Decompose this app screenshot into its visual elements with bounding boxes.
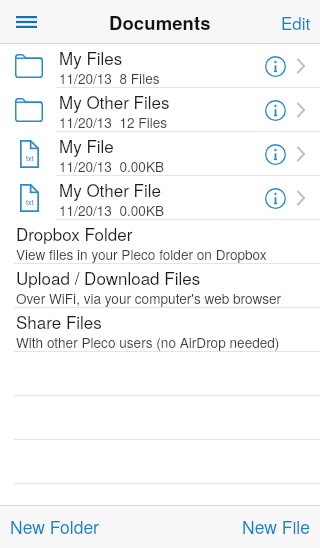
button[interactable]: Info: [261, 88, 295, 132]
button[interactable]: Edit: [272, 0, 320, 44]
button[interactable]: My Files: [0, 44, 320, 88]
staticText: Share Files: [16, 309, 102, 333]
staticText: New Folder: [10, 514, 99, 539]
staticText: Over WiFi, via your computer's web brows…: [16, 288, 282, 307]
staticText: 11/20/13 0.00KB: [59, 156, 165, 175]
button[interactable]: txt: [0, 176, 320, 220]
button[interactable]: New Folder: [0, 505, 109, 548]
button[interactable]: My Other Files: [0, 88, 320, 132]
button[interactable]: txt: [0, 132, 320, 176]
button[interactable]: Info: [261, 44, 295, 88]
button[interactable]: Info: [261, 132, 295, 176]
staticText: With other Pleco users (no AirDrop neede…: [16, 332, 280, 351]
button[interactable]: Info: [261, 176, 295, 220]
button[interactable]: New File: [232, 505, 320, 548]
button[interactable]: Share Files: [0, 308, 320, 352]
staticText: My Other Files: [59, 89, 170, 113]
button[interactable]: Upload / Download Files: [0, 264, 320, 308]
staticText: 11/20/13 8 Files: [59, 68, 160, 87]
button[interactable]: Menu: [0, 0, 48, 44]
staticText: New File: [242, 514, 310, 539]
staticText: 11/20/13 12 Files: [59, 112, 168, 131]
staticText: Dropbox Folder: [16, 221, 133, 245]
staticText: 11/20/13 0.00KB: [59, 200, 165, 219]
button[interactable]: Dropbox Folder: [0, 220, 320, 264]
staticText: My Other File: [59, 177, 161, 201]
staticText: txt: [26, 153, 34, 163]
staticText: txt: [26, 197, 34, 207]
staticText: Upload / Download Files: [16, 265, 201, 289]
staticText: Documents: [109, 9, 211, 35]
staticText: My File: [59, 133, 114, 157]
staticText: My Files: [59, 45, 123, 69]
staticText: Edit: [281, 10, 311, 34]
staticText: View files in your Pleco folder on Dropb…: [16, 244, 267, 263]
